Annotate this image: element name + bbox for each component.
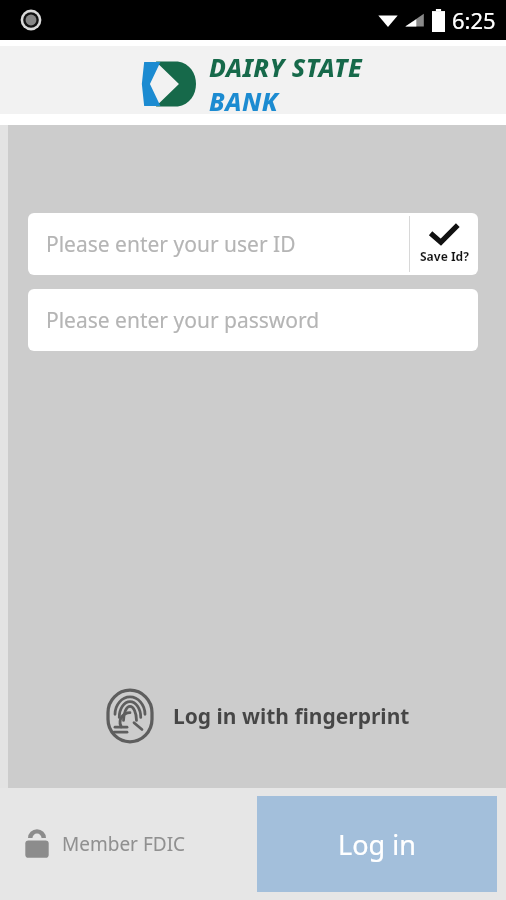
staticText: DAIRY STATE xyxy=(209,50,363,84)
staticText: Save Id? xyxy=(420,248,469,264)
button[interactable]: Log in with fingerprint xyxy=(8,688,506,744)
button[interactable]: Please enter your user ID xyxy=(28,213,478,275)
staticText: 6:25 xyxy=(452,5,496,35)
button[interactable]: Please enter your password xyxy=(28,289,478,351)
staticText: Log in with fingerprint xyxy=(173,702,410,731)
staticText: Log in xyxy=(338,826,416,863)
staticText: BANK xyxy=(209,84,279,118)
button[interactable]: Log in xyxy=(257,796,497,892)
button[interactable]: Save Id xyxy=(410,213,478,275)
staticText: Please enter your user ID xyxy=(46,230,296,259)
staticText: Member FDIC xyxy=(62,831,186,857)
staticText: Please enter your password xyxy=(46,306,320,335)
